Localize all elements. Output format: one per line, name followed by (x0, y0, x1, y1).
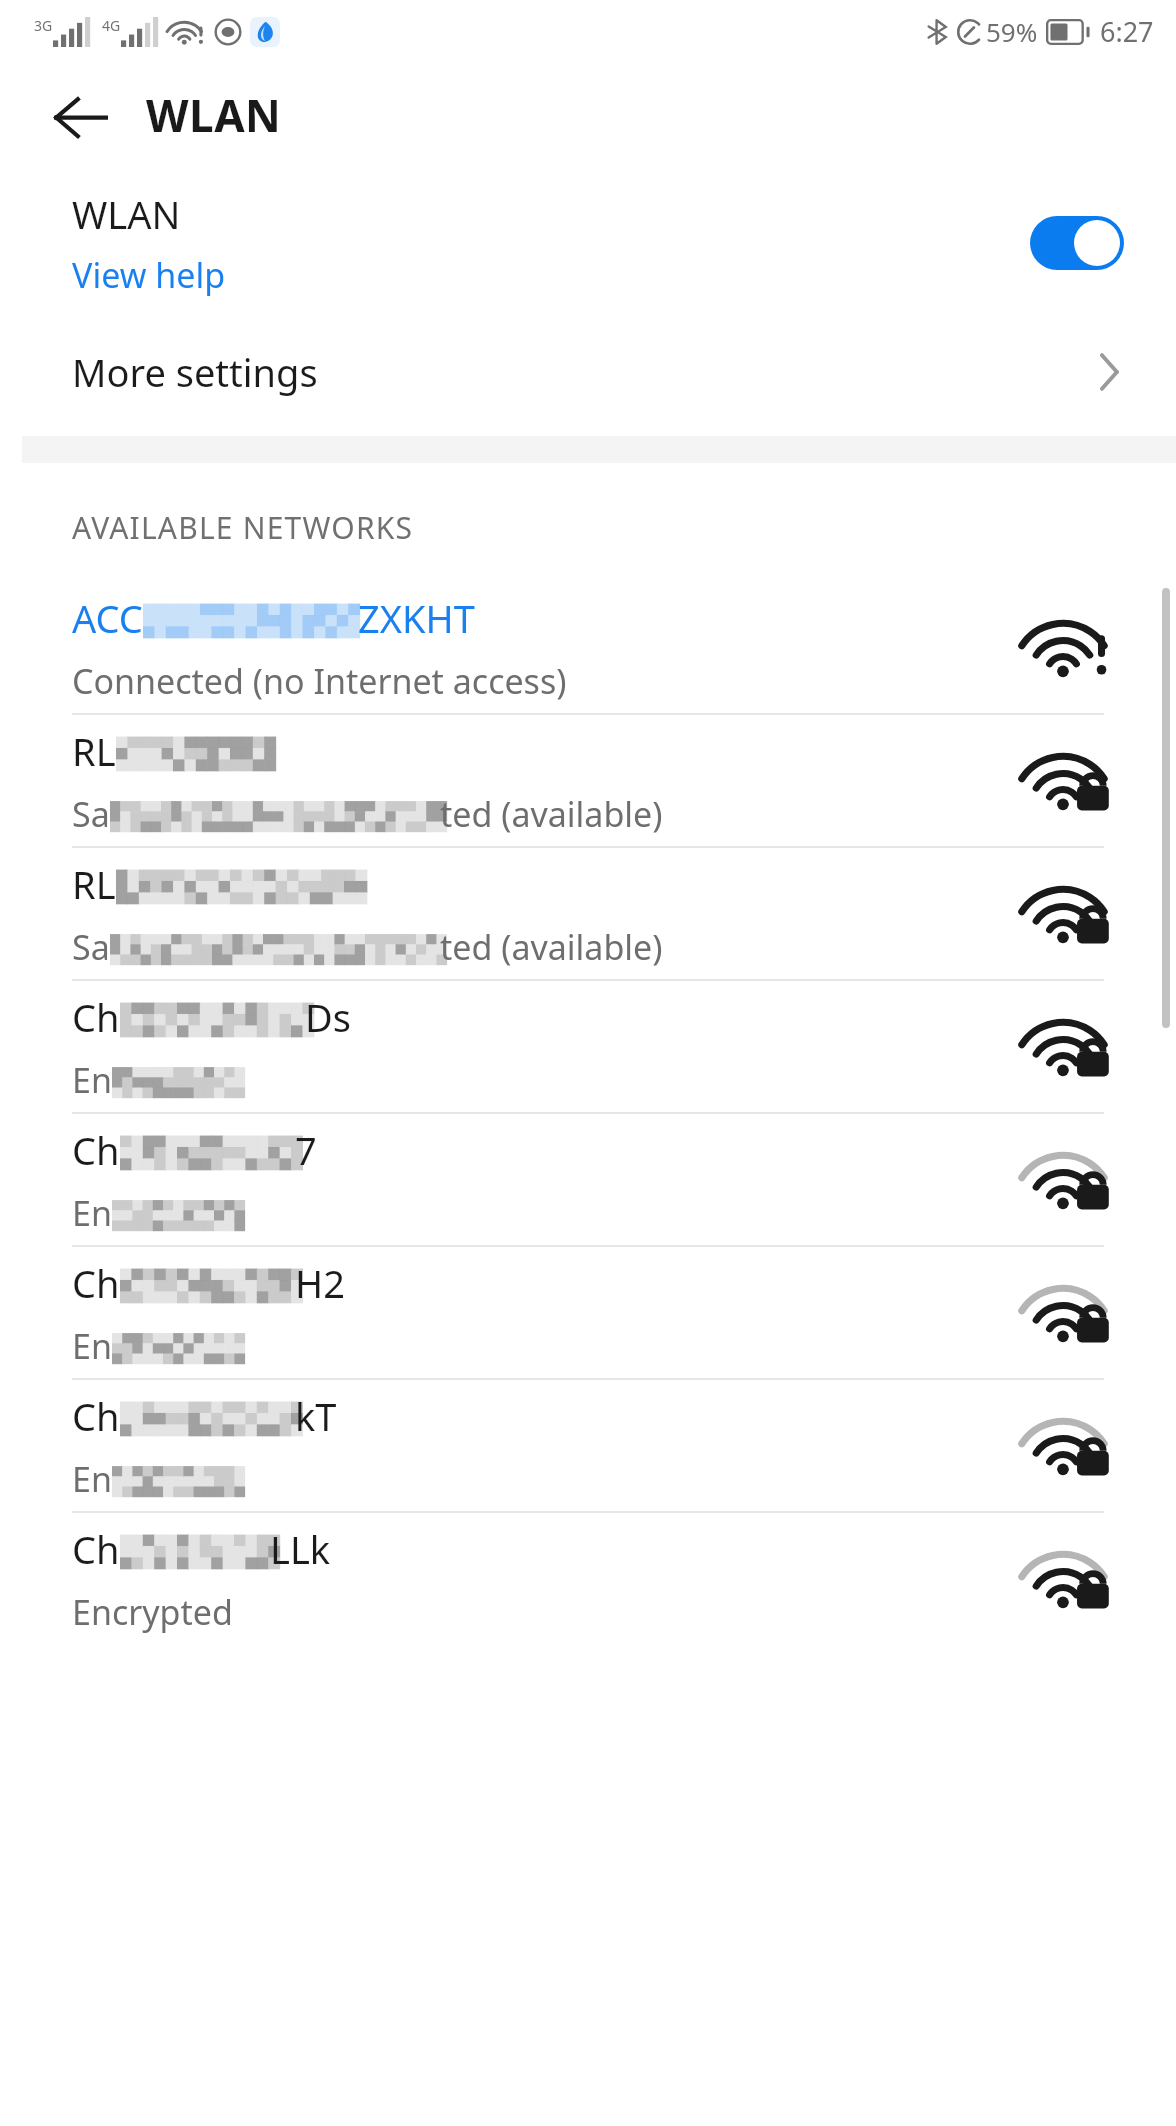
button[interactable]: Ch (0, 1114, 1176, 1245)
staticText: ted (available) (440, 791, 663, 837)
staticText: 3G (34, 16, 53, 35)
staticText: 59% (986, 14, 1038, 49)
button[interactable]: WLAN (0, 168, 1176, 318)
staticText: kT (295, 1390, 337, 1442)
staticText: More settings (72, 346, 1098, 398)
staticText: RL (72, 858, 116, 910)
staticText: LLk (270, 1523, 331, 1575)
button[interactable]: Back (42, 77, 118, 153)
staticText: Ch (72, 1390, 120, 1442)
staticText: ZXKHT (358, 592, 475, 644)
staticText: Sa (72, 791, 110, 837)
staticText: En (72, 1057, 112, 1103)
staticText: Ch (72, 1257, 120, 1309)
staticText: En (72, 1323, 112, 1369)
staticText: Ch (72, 1124, 120, 1176)
staticText: 6:27 (1100, 13, 1154, 50)
staticText: 4G (102, 16, 121, 35)
button[interactable]: More settings (0, 318, 1176, 426)
button[interactable]: ACC (0, 582, 1176, 713)
button[interactable]: Ch (0, 1513, 1176, 1644)
staticText: Ds (305, 991, 351, 1043)
staticText: ACC (72, 592, 143, 644)
staticText: 7 (295, 1124, 317, 1176)
staticText: H2 (295, 1257, 345, 1309)
staticText: Connected (no Internet access) (72, 658, 567, 704)
staticText: RL (72, 725, 116, 777)
staticText: En (72, 1456, 112, 1502)
staticText: Ch (72, 991, 120, 1043)
button[interactable]: View help (72, 252, 226, 298)
button[interactable]: Ch (0, 1380, 1176, 1511)
button[interactable]: WLAN on (1030, 216, 1124, 270)
staticText: En (72, 1190, 112, 1236)
staticText: Ch (72, 1523, 120, 1575)
button[interactable]: RL (0, 848, 1176, 979)
staticText: WLAN (72, 188, 181, 240)
staticText: WLAN (146, 85, 282, 145)
button[interactable]: RL (0, 715, 1176, 846)
staticText: AVAILABLE NETWORKS (72, 507, 414, 548)
staticText: Encrypted (72, 1589, 233, 1635)
button[interactable]: Ch (0, 1247, 1176, 1378)
button[interactable]: Ch (0, 981, 1176, 1112)
staticText: Sa (72, 924, 110, 970)
staticText: ted (available) (440, 924, 663, 970)
